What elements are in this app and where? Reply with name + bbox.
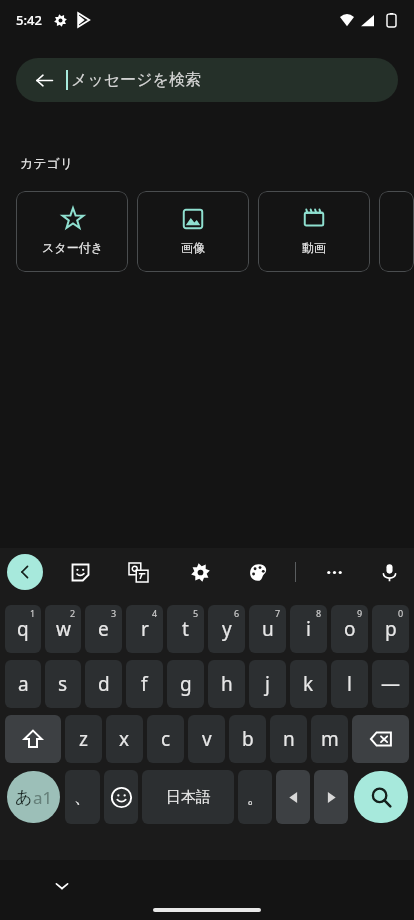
button[interactable]: a xyxy=(5,660,41,708)
button[interactable]: Translate xyxy=(121,555,155,589)
staticText: 5 xyxy=(193,607,199,619)
staticText: c xyxy=(161,726,171,752)
staticText: j xyxy=(265,671,270,697)
button[interactable]: Back xyxy=(30,66,58,94)
staticText: t xyxy=(182,616,189,642)
staticText: 9 xyxy=(357,607,363,619)
staticText: 2 xyxy=(70,607,76,619)
button[interactable]: Back xyxy=(16,58,398,102)
staticText: 6 xyxy=(234,607,240,619)
staticText: o xyxy=(344,616,356,642)
button[interactable]: Theme xyxy=(241,555,275,589)
button[interactable]: 、 xyxy=(65,770,100,824)
staticText: 7 xyxy=(275,607,281,619)
staticText: a1 xyxy=(33,786,53,809)
staticText: b xyxy=(242,726,254,752)
staticText: h xyxy=(221,671,233,697)
staticText: スター付き xyxy=(42,240,103,255)
button[interactable]: Move cursor left xyxy=(276,770,310,824)
staticText: 日本語 xyxy=(166,788,211,807)
staticText: l xyxy=(347,671,352,697)
button[interactable] xyxy=(379,191,414,272)
staticText: a xyxy=(18,671,29,697)
button[interactable]: Backspace xyxy=(352,715,409,763)
staticText: p xyxy=(385,616,397,642)
button[interactable]: 動画 xyxy=(258,191,370,272)
button[interactable]: Hide keyboard xyxy=(46,870,78,902)
button[interactable]: z xyxy=(65,715,102,763)
staticText: 画像 xyxy=(181,240,205,255)
staticText: 、 xyxy=(74,787,91,808)
button[interactable]: — xyxy=(372,660,409,708)
staticText: カテゴリ xyxy=(20,155,74,171)
button[interactable]: g xyxy=(167,660,204,708)
button[interactable]: b xyxy=(229,715,266,763)
button[interactable]: 画像 xyxy=(137,191,249,272)
button[interactable]: 。 xyxy=(238,770,272,824)
button[interactable]: p xyxy=(372,605,409,653)
staticText: 1 xyxy=(30,607,36,619)
button[interactable]: Emoji xyxy=(104,770,138,824)
button[interactable]: d xyxy=(85,660,122,708)
staticText: u xyxy=(262,616,274,642)
button[interactable]: e xyxy=(85,605,122,653)
button[interactable]: j xyxy=(249,660,286,708)
staticText: 動画 xyxy=(302,240,326,255)
staticText: 4 xyxy=(152,607,158,619)
staticText: 0 xyxy=(398,607,404,619)
button[interactable]: i xyxy=(290,605,327,653)
button[interactable]: r xyxy=(126,605,163,653)
button[interactable]: Shift xyxy=(5,715,61,763)
button[interactable]: n xyxy=(270,715,307,763)
button[interactable]: c xyxy=(147,715,184,763)
staticText: m xyxy=(321,726,339,752)
staticText: w xyxy=(56,616,71,642)
staticText: y xyxy=(222,616,232,642)
staticText: k xyxy=(303,671,314,697)
button[interactable]: Close toolbar xyxy=(7,554,43,590)
button[interactable]: Move cursor right xyxy=(314,770,348,824)
staticText: — xyxy=(381,671,401,697)
staticText: v xyxy=(202,726,212,752)
staticText: r xyxy=(141,616,149,642)
staticText: i xyxy=(306,616,311,642)
button[interactable]: m xyxy=(311,715,348,763)
button[interactable]: o xyxy=(331,605,368,653)
button[interactable]: 日本語 xyxy=(142,770,234,824)
button[interactable]: f xyxy=(126,660,163,708)
staticText: 3 xyxy=(111,607,117,619)
staticText: e xyxy=(98,616,109,642)
button[interactable]: x xyxy=(106,715,143,763)
staticText: 5:42 xyxy=(16,11,42,29)
button[interactable]: Search xyxy=(354,771,408,823)
button[interactable]: スター付き xyxy=(16,191,128,272)
staticText: メッセージを検索 xyxy=(71,70,201,90)
staticText: s xyxy=(58,671,68,697)
staticText: d xyxy=(98,671,110,697)
button[interactable]: h xyxy=(208,660,245,708)
staticText: f xyxy=(141,671,148,697)
button[interactable]: Stickers xyxy=(63,555,97,589)
button[interactable]: w xyxy=(45,605,81,653)
staticText: 8 xyxy=(316,607,322,619)
button[interactable]: More options xyxy=(317,555,351,589)
staticText: x xyxy=(119,726,130,752)
button[interactable]: Settings xyxy=(183,555,217,589)
staticText: z xyxy=(79,726,88,752)
button[interactable]: u xyxy=(249,605,286,653)
button[interactable]: k xyxy=(290,660,327,708)
button[interactable]: y xyxy=(208,605,245,653)
button[interactable]: Voice input xyxy=(372,555,406,589)
staticText: g xyxy=(180,671,192,697)
staticText: あ xyxy=(15,787,33,808)
button[interactable]: v xyxy=(188,715,225,763)
button[interactable]: あ xyxy=(7,771,60,823)
button[interactable]: l xyxy=(331,660,368,708)
staticText: n xyxy=(283,726,295,752)
button[interactable]: q xyxy=(5,605,41,653)
button[interactable]: s xyxy=(45,660,81,708)
button[interactable]: t xyxy=(167,605,204,653)
staticText: 。 xyxy=(247,787,264,808)
staticText: q xyxy=(17,616,29,642)
